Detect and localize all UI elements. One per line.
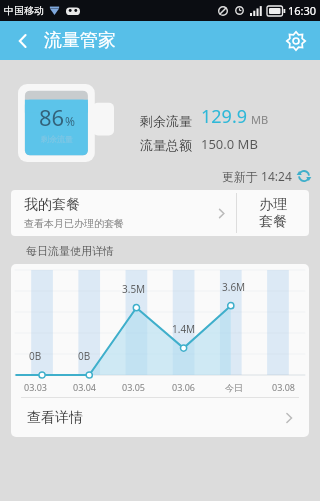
button[interactable]: 办理 套餐 — [237, 190, 309, 236]
staticText: MB — [251, 112, 269, 127]
staticText: 03.04 — [73, 381, 97, 393]
staticText: 0B — [29, 349, 42, 363]
button[interactable]: Settings — [278, 23, 314, 59]
staticText: % — [65, 113, 75, 129]
staticText: 150.0 MB — [201, 135, 258, 153]
staticText: 1.4M — [172, 322, 196, 336]
staticText: 办理 套餐 — [259, 196, 287, 230]
staticText: 查看本月已办理的套餐 — [24, 217, 124, 230]
staticText: 16:30 — [288, 3, 317, 18]
staticText: 129.9 — [201, 104, 248, 129]
staticText: 03.03 — [24, 381, 48, 393]
staticText: 中国移动 — [4, 4, 44, 17]
staticText: 剩余流量 — [140, 113, 192, 129]
staticText: 03.05 — [122, 381, 146, 393]
button[interactable]: 我的套餐 — [11, 190, 236, 236]
staticText: 更新于 14:24 — [222, 168, 292, 184]
staticText: 0B — [78, 349, 91, 363]
staticText: 86 — [39, 102, 65, 132]
staticText: 今日 — [225, 382, 243, 393]
staticText: 3.5M — [122, 282, 146, 296]
button[interactable]: Back — [6, 24, 40, 58]
staticText: 流量管家 — [44, 29, 116, 52]
staticText: 剩余流量 — [41, 134, 73, 144]
staticText: 每日流量使用详情 — [26, 244, 114, 258]
button[interactable]: 查看详情 — [11, 398, 309, 437]
staticText: 流量总额 — [140, 137, 192, 153]
staticText: 我的套餐 — [24, 196, 80, 214]
other: Refresh — [297, 169, 311, 183]
staticText: 查看详情 — [27, 409, 282, 427]
staticText: 03.06 — [172, 381, 196, 393]
staticText: 03.08 — [272, 381, 296, 393]
staticText: 3.6M — [222, 280, 246, 294]
button[interactable]: 更新于 14:24 — [222, 168, 311, 184]
